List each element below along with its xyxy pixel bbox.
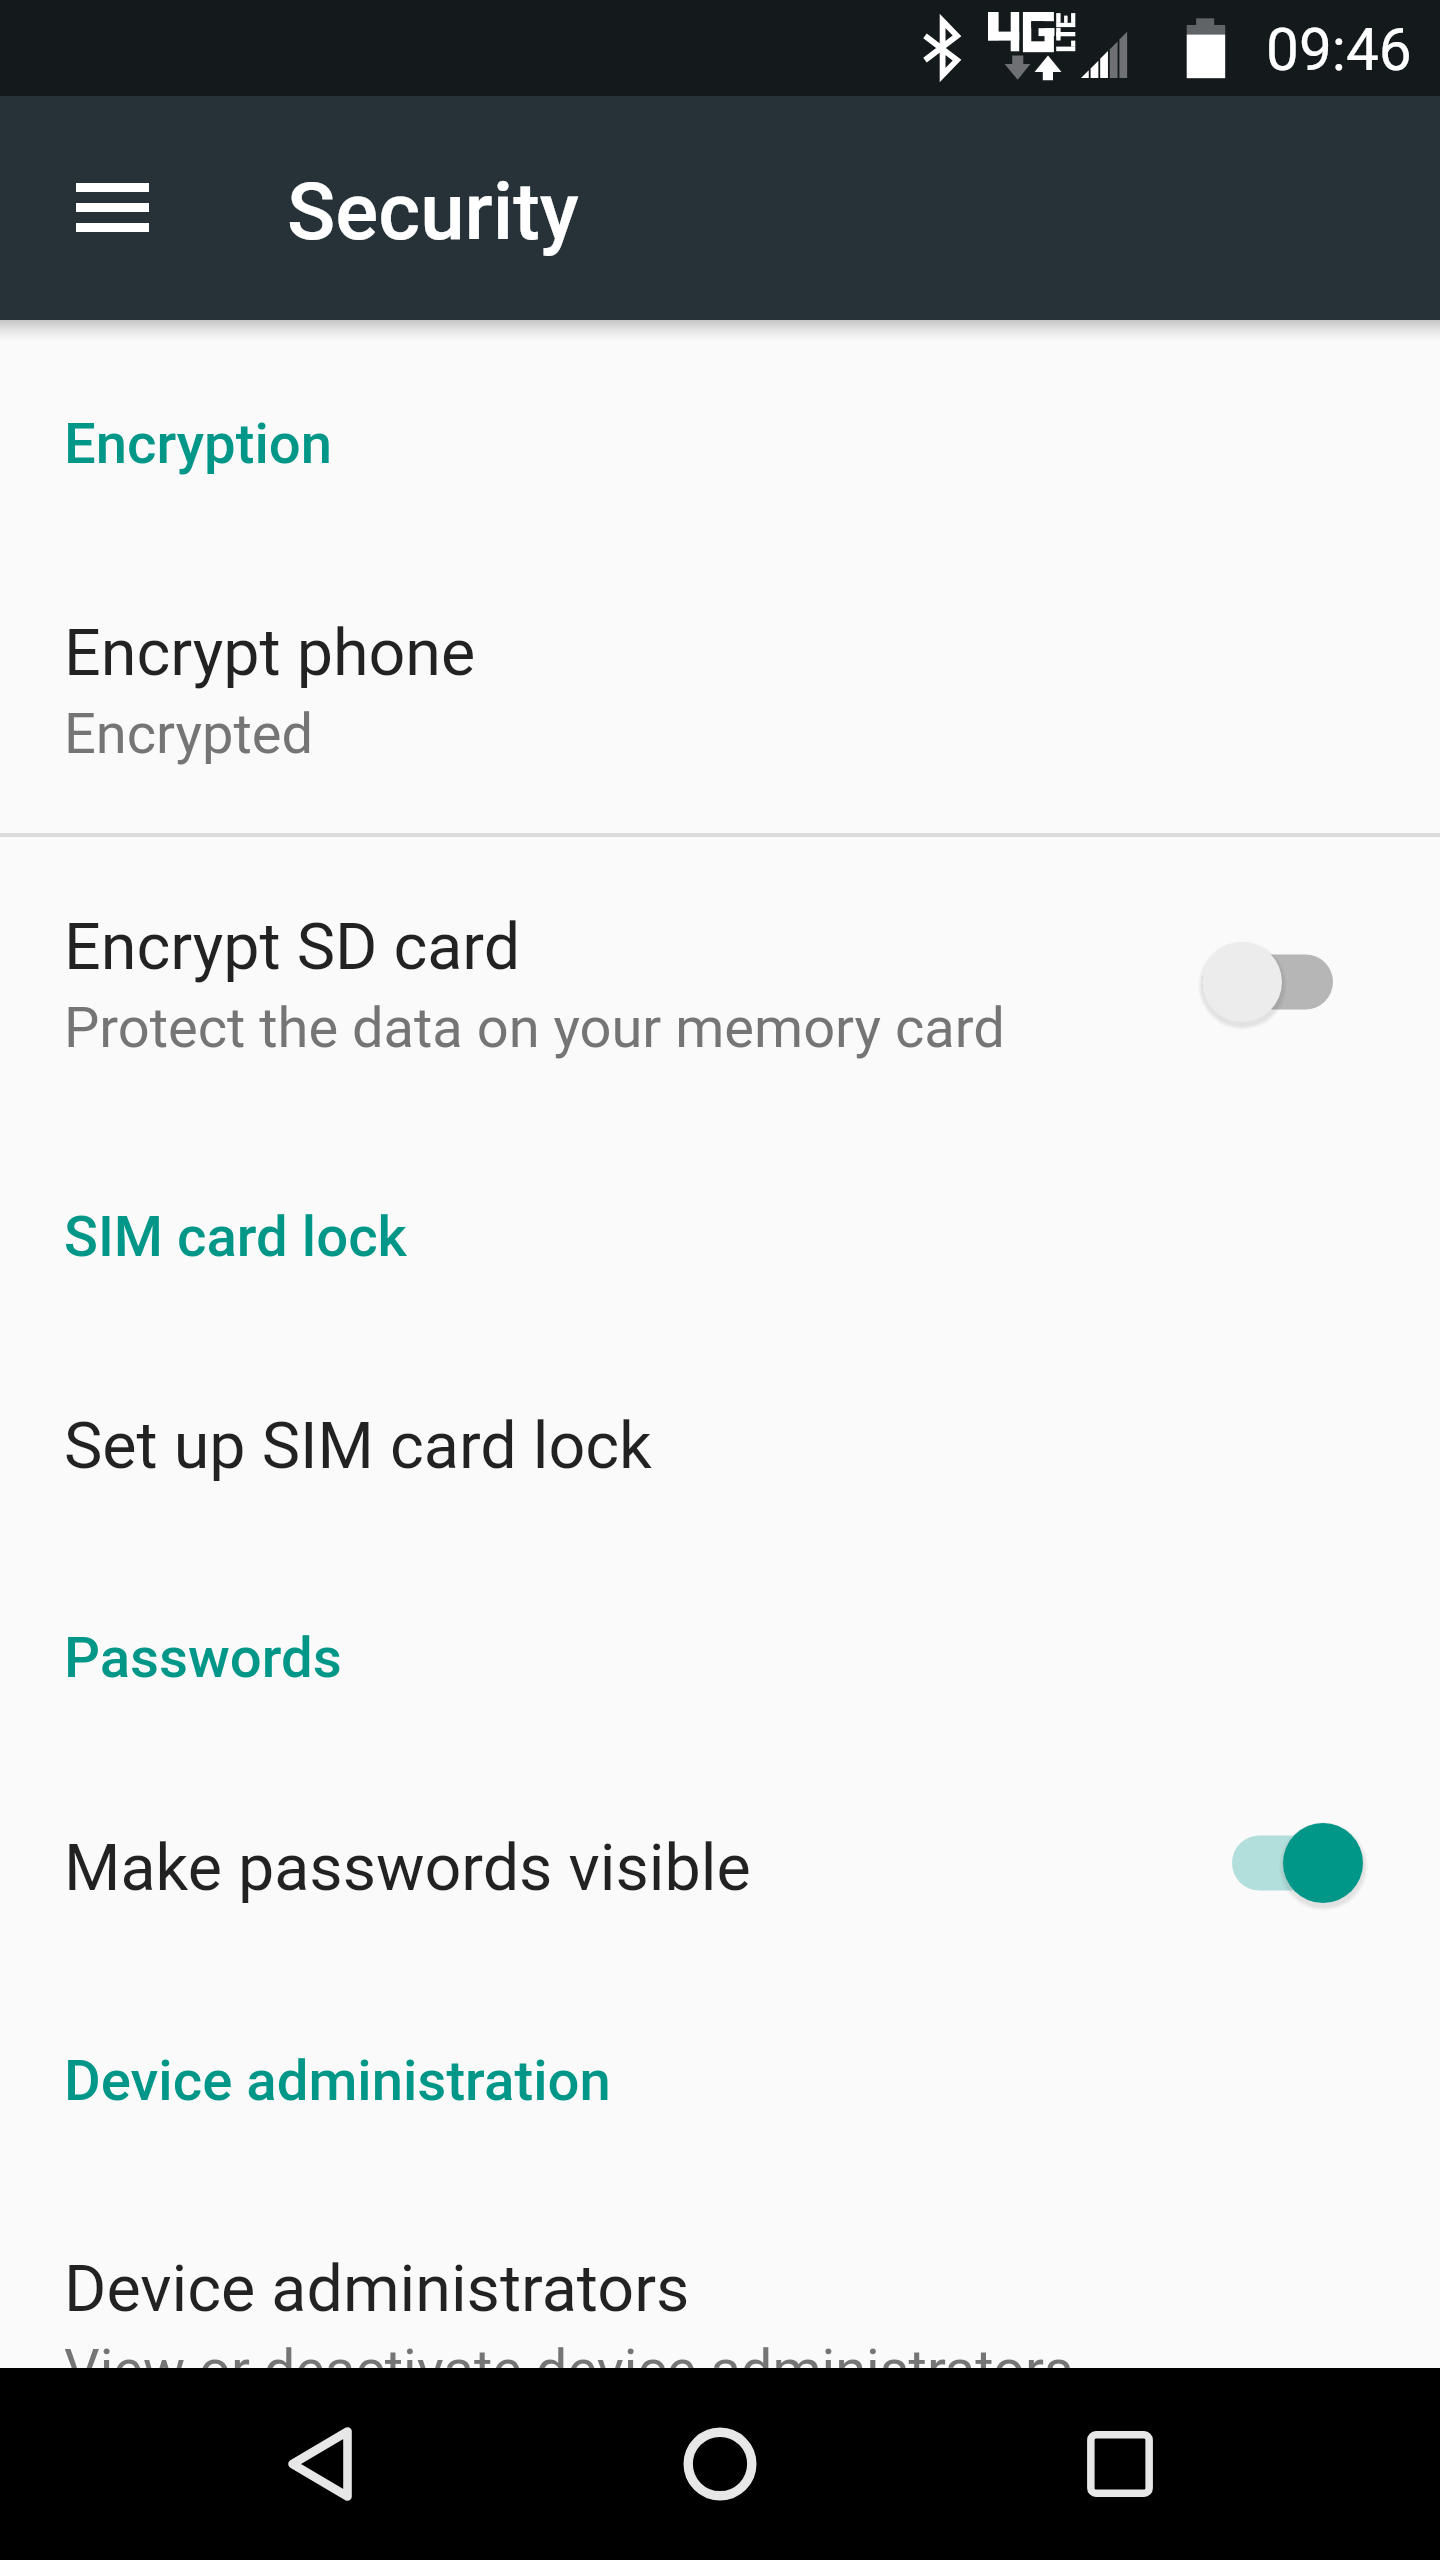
staticText: View or deactivate device administrators bbox=[64, 2337, 1073, 2403]
staticText: Encrypt phone bbox=[64, 615, 476, 691]
button[interactable]: Encrypt SD card toggle bbox=[1198, 938, 1337, 1030]
staticText: Protect the data on your memory card bbox=[64, 995, 1005, 1061]
button[interactable]: Device administrators bbox=[0, 2206, 1440, 2368]
button[interactable]: Home bbox=[624, 2368, 816, 2560]
button[interactable]: Open navigation menu bbox=[42, 138, 182, 278]
staticText: Passwords bbox=[64, 1625, 342, 1691]
button[interactable]: Set up SIM card lock bbox=[0, 1362, 1440, 1568]
button[interactable]: Recent apps bbox=[1024, 2368, 1216, 2560]
staticText: Encryption bbox=[64, 411, 333, 477]
button[interactable]: Back bbox=[224, 2368, 416, 2560]
button[interactable]: Make passwords visible bbox=[0, 1784, 1440, 1990]
staticText: Make passwords visible bbox=[64, 1830, 751, 1906]
staticText: Encrypt SD card bbox=[64, 909, 521, 985]
staticText: 09:46 bbox=[1266, 16, 1412, 85]
button[interactable]: Encrypt phone bbox=[0, 510, 1440, 833]
staticText: Set up SIM card lock bbox=[64, 1408, 652, 1484]
staticText: Device administration bbox=[64, 2048, 611, 2114]
staticText: SIM card lock bbox=[64, 1204, 407, 1270]
staticText: Encrypted bbox=[64, 701, 314, 767]
staticText: Security bbox=[287, 165, 579, 259]
button[interactable]: Make passwords visible toggle bbox=[1228, 1819, 1367, 1911]
button[interactable]: Encrypt SD card bbox=[0, 836, 1440, 1126]
staticText: Device administrators bbox=[64, 2251, 690, 2327]
